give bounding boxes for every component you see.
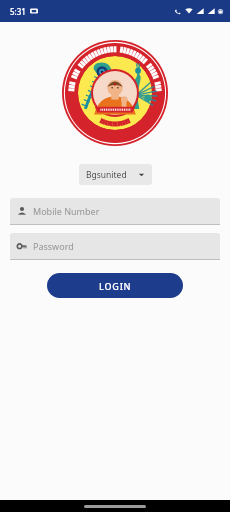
staticText: LOGIN	[99, 280, 132, 292]
button[interactable]: Password	[10, 233, 220, 259]
button[interactable]: LOGIN	[47, 273, 183, 298]
staticText: Password	[33, 240, 74, 252]
button[interactable]: Bgsunited	[79, 164, 152, 185]
staticText: Mobile Number	[33, 205, 100, 217]
staticText: Bgsunited	[86, 169, 127, 181]
button[interactable]: Mobile Number	[10, 198, 220, 224]
staticText: 5:31	[10, 6, 26, 17]
